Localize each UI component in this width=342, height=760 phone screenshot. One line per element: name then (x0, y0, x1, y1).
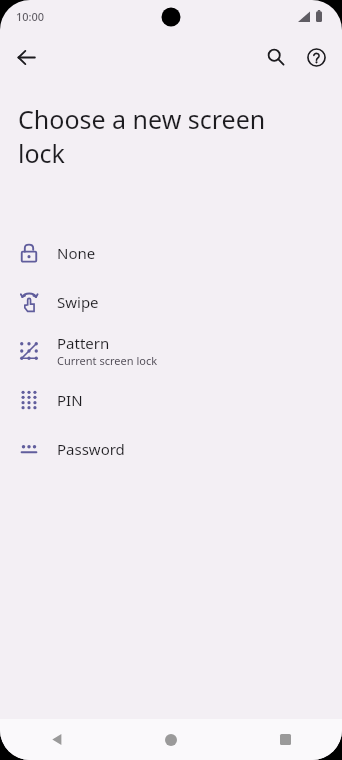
staticText: 10:00 (16, 9, 45, 24)
button[interactable]: Home (114, 719, 228, 760)
staticText: Swipe (57, 292, 99, 312)
button[interactable]: Back (6, 37, 46, 77)
staticText: Current screen lock (57, 353, 158, 368)
button[interactable]: Search (256, 37, 296, 77)
button[interactable]: None (0, 228, 342, 277)
button[interactable]: PIN (0, 375, 342, 424)
staticText: Pattern (57, 333, 110, 353)
staticText: Password (57, 439, 125, 459)
button[interactable]: Swipe (0, 277, 342, 326)
staticText: PIN (57, 390, 83, 410)
staticText: Choose a new screen lock (18, 102, 316, 170)
button[interactable]: Back (0, 719, 114, 760)
button[interactable]: Pattern (0, 326, 342, 375)
button[interactable]: Recent apps (228, 719, 342, 760)
button[interactable]: Password (0, 424, 342, 473)
button[interactable]: Help (296, 37, 336, 77)
staticText: None (57, 243, 96, 263)
